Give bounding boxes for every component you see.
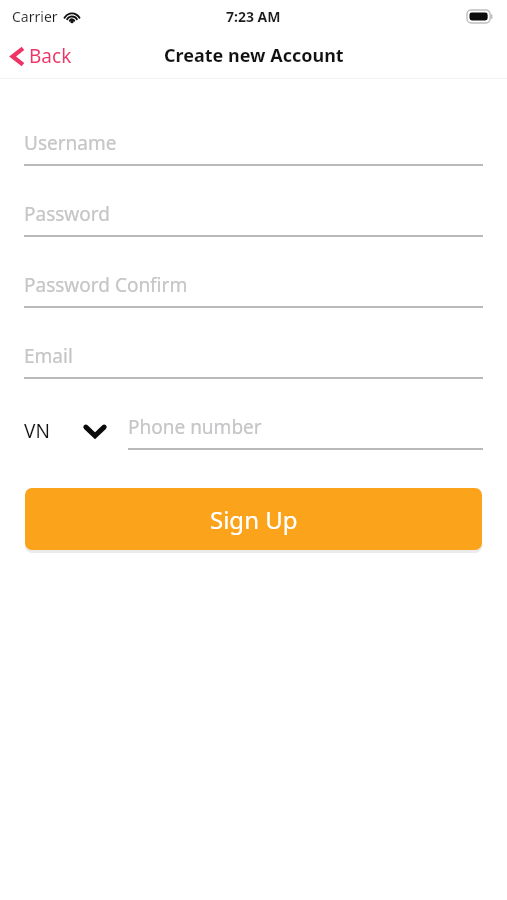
button[interactable]: Sign Up (25, 488, 482, 550)
button[interactable]: Email (0, 340, 507, 379)
other: Select country code (80, 416, 110, 446)
staticText: Sign Up (210, 503, 298, 536)
button[interactable]: Phone number (128, 411, 483, 450)
button[interactable]: Back (0, 37, 82, 75)
staticText: Password (24, 201, 110, 227)
staticText: Email (24, 343, 73, 369)
staticText: Carrier (12, 7, 58, 26)
button[interactable]: Username (0, 127, 507, 166)
button[interactable]: VN (24, 416, 114, 446)
staticText: Create new Account (164, 43, 344, 68)
staticText: Back (29, 43, 72, 69)
staticText: Username (24, 130, 117, 156)
staticText: VN (24, 418, 50, 444)
staticText: Phone number (128, 414, 262, 440)
button[interactable]: Password Confirm (0, 269, 507, 308)
staticText: 7:23 AM (226, 7, 281, 26)
staticText: Password Confirm (24, 272, 188, 298)
button[interactable]: Password (0, 198, 507, 237)
